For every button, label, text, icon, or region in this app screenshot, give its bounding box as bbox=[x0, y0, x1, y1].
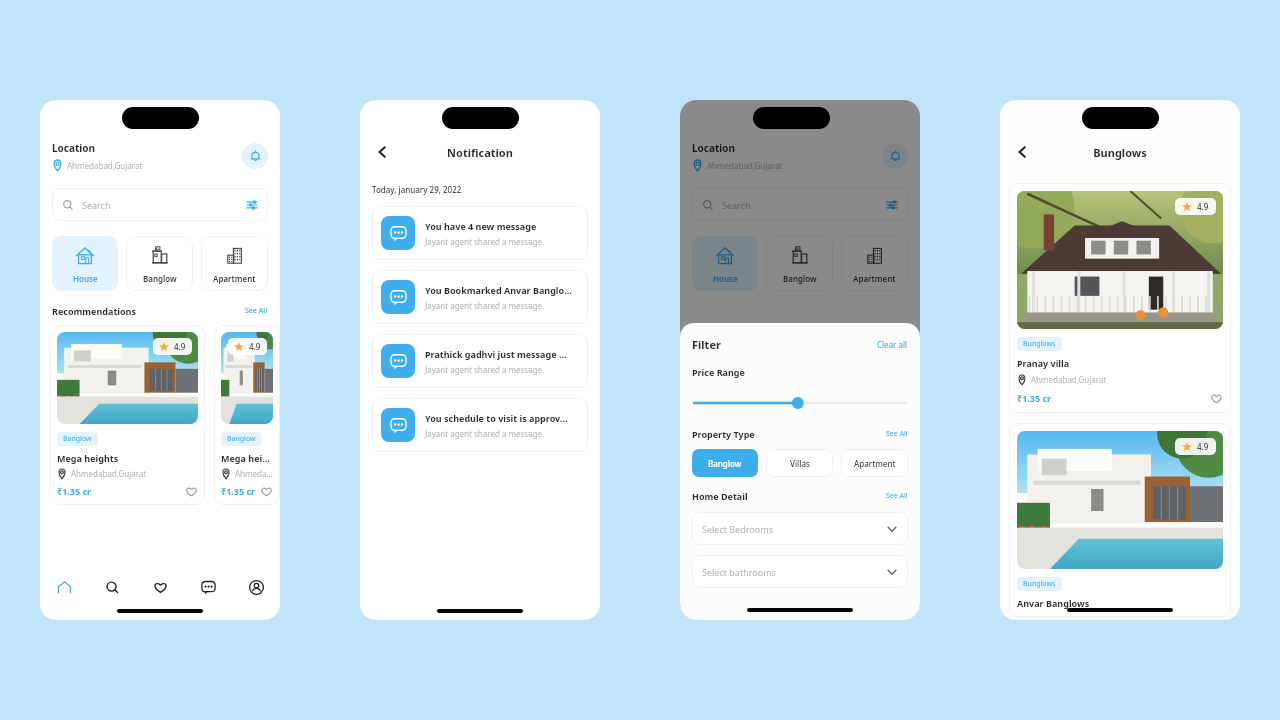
staticText: Banglow bbox=[783, 273, 817, 284]
staticText: Ahmedabad,Gujarat bbox=[67, 160, 143, 171]
staticText: Ahmedabad,Gujarat bbox=[71, 468, 147, 479]
button[interactable]: Back bbox=[1012, 142, 1032, 162]
staticText: Notification bbox=[372, 145, 588, 160]
button[interactable]: Select Bedrooms bbox=[692, 512, 908, 545]
button[interactable]: You have 4 new message bbox=[372, 206, 588, 260]
staticText: Villas bbox=[790, 458, 810, 469]
button[interactable]: 4.9 bbox=[1009, 423, 1231, 617]
button[interactable]: Villas bbox=[766, 449, 833, 477]
staticText: Jayant agent shared a message bbox=[425, 364, 543, 375]
button[interactable]: Clear all bbox=[877, 339, 908, 350]
staticText: Location bbox=[692, 141, 736, 155]
button[interactable]: Favourite bbox=[1209, 391, 1223, 405]
staticText: Select Bedrooms bbox=[702, 523, 886, 535]
staticText: 4.9 bbox=[1197, 441, 1209, 452]
button[interactable]: Select bathrooms bbox=[692, 555, 908, 588]
staticText: You schedule to visit is approv... bbox=[425, 412, 568, 424]
staticText: Ahmedabad,Gujarat bbox=[235, 468, 273, 479]
staticText: Today, january 29, 2022 bbox=[372, 184, 462, 195]
staticText: 4.9 bbox=[1197, 201, 1209, 212]
button[interactable]: Prathick gadhvi just message ... bbox=[372, 334, 588, 388]
staticText: See All bbox=[886, 491, 908, 501]
staticText: Search bbox=[82, 199, 246, 211]
staticText: Apartment bbox=[213, 273, 256, 284]
staticText: Ahmedabad,Gujarat bbox=[707, 160, 783, 171]
button[interactable]: Search bbox=[692, 188, 908, 221]
staticText: Apartment bbox=[854, 458, 896, 469]
button[interactable]: Profile bbox=[232, 572, 280, 602]
staticText: Ahmedabad,Gujarat bbox=[1031, 374, 1107, 385]
staticText: You Bookmarked Anvar Banglo... bbox=[425, 284, 572, 296]
button[interactable]: Banglow bbox=[126, 236, 193, 291]
button[interactable]: 4.9 bbox=[214, 325, 280, 505]
staticText: Anvar Banglows bbox=[1017, 597, 1090, 609]
button[interactable]: Search bbox=[52, 188, 268, 221]
staticText: See All bbox=[886, 429, 908, 439]
button[interactable]: Apartment bbox=[841, 236, 908, 291]
button[interactable]: Notifications bbox=[242, 143, 268, 169]
staticText: House bbox=[713, 273, 738, 284]
button[interactable] bbox=[692, 396, 908, 410]
button[interactable]: Banglow bbox=[692, 449, 758, 477]
button[interactable]: See All bbox=[886, 429, 908, 439]
staticText: Bunglows bbox=[1012, 145, 1228, 160]
staticText: See All bbox=[245, 306, 268, 316]
staticText: Bunglows bbox=[1023, 339, 1056, 349]
button[interactable]: House bbox=[52, 236, 118, 291]
staticText: Recommendations bbox=[52, 305, 245, 317]
staticText: Location bbox=[52, 141, 96, 155]
button[interactable]: Banglow bbox=[766, 236, 833, 291]
button[interactable]: Notifications bbox=[882, 143, 908, 169]
staticText: Jayant agent shared a message bbox=[425, 236, 543, 247]
button[interactable]: 4.9 bbox=[1009, 183, 1231, 413]
staticText: 4.9 bbox=[249, 341, 261, 352]
button[interactable]: 4.9 bbox=[50, 325, 205, 505]
button[interactable]: Favourite bbox=[259, 484, 273, 498]
staticText: Clear all bbox=[877, 339, 908, 350]
staticText: Property Type bbox=[692, 428, 886, 440]
button[interactable]: Apartment bbox=[841, 449, 908, 477]
staticText: Pranay villa bbox=[1017, 357, 1070, 369]
staticText: ₹1.35 cr bbox=[57, 485, 184, 497]
staticText: Filter bbox=[692, 337, 877, 352]
staticText: Mega heights bbox=[221, 452, 273, 464]
button[interactable]: Messages bbox=[184, 572, 232, 602]
staticText: Home Detail bbox=[692, 490, 886, 502]
button[interactable]: Search bbox=[88, 572, 136, 602]
staticText: Prathick gadhvi just message ... bbox=[425, 348, 567, 360]
button[interactable]: Apartment bbox=[201, 236, 268, 291]
staticText: House bbox=[73, 273, 98, 284]
staticText: Search bbox=[722, 199, 886, 211]
button[interactable]: Favourites bbox=[136, 572, 184, 602]
staticText: You have 4 new message bbox=[425, 220, 537, 232]
staticText: ₹1.35 cr bbox=[1017, 392, 1209, 404]
staticText: Jayant agent shared a message bbox=[425, 300, 543, 311]
staticText: Banglow bbox=[227, 434, 256, 444]
staticText: Jayant agent shared a message bbox=[425, 428, 543, 439]
staticText: Banglow bbox=[708, 458, 742, 469]
staticText: ₹1.35 cr bbox=[221, 485, 259, 497]
button[interactable]: Favourite bbox=[184, 484, 198, 498]
staticText: Mega heights bbox=[57, 452, 119, 464]
staticText: 4.9 bbox=[174, 341, 186, 352]
staticText: Banglow bbox=[63, 434, 92, 444]
button[interactable]: House bbox=[692, 236, 758, 291]
staticText: Banglow bbox=[143, 273, 177, 284]
staticText: Apartment bbox=[853, 273, 896, 284]
button[interactable]: Home bbox=[40, 572, 88, 602]
button[interactable]: See All bbox=[886, 491, 908, 501]
button[interactable]: You schedule to visit is approv... bbox=[372, 398, 588, 452]
staticText: Bunglows bbox=[1023, 579, 1056, 589]
button[interactable]: You Bookmarked Anvar Banglo... bbox=[372, 270, 588, 324]
button[interactable]: Back bbox=[372, 142, 392, 162]
button[interactable]: Recommendations bbox=[52, 305, 268, 317]
staticText: Select bathrooms bbox=[702, 566, 886, 578]
staticText: Price Range bbox=[692, 366, 745, 378]
